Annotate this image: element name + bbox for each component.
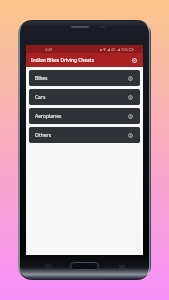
button[interactable]: Cars: [29, 89, 140, 105]
staticText: Bikes: [35, 75, 48, 82]
button[interactable]: Back: [117, 264, 126, 269]
button[interactable]: Home: [70, 262, 99, 270]
staticText: Aeroplanes: [35, 113, 62, 120]
staticText: 4:49: [45, 47, 53, 52]
button[interactable]: Bikes: [29, 70, 140, 86]
staticText: 76%: [121, 47, 128, 52]
staticText: 4G: [111, 47, 116, 52]
button[interactable]: Info: [130, 56, 139, 65]
staticText: Indian Bikes Driving Cheats: [31, 57, 95, 64]
button[interactable]: Recent apps: [45, 264, 52, 269]
staticText: Cars: [35, 94, 46, 101]
button[interactable]: Others: [29, 127, 140, 143]
staticText: Others: [35, 132, 52, 139]
button[interactable]: Aeroplanes: [29, 108, 140, 124]
